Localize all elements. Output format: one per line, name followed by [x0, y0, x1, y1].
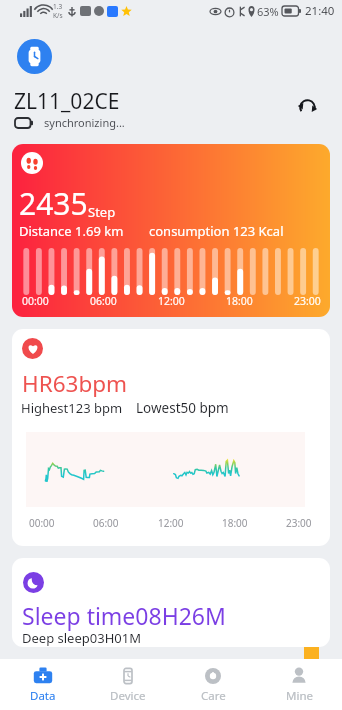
button[interactable]: Watch device — [17, 39, 52, 74]
button[interactable]: Care — [170, 659, 256, 710]
staticText: K/s — [53, 11, 63, 20]
staticText: Mine — [286, 688, 313, 704]
button[interactable]: Sleep time08H26M — [12, 558, 330, 647]
staticText: 21:40 — [305, 3, 335, 19]
staticText: 00:00 — [22, 294, 49, 308]
staticText: consumption 123 Kcal — [149, 222, 284, 240]
staticText: 18:00 — [222, 516, 248, 530]
button[interactable]: Refresh — [292, 92, 322, 122]
staticText: Deep sleep03H01M — [22, 629, 141, 647]
staticText: Step — [88, 203, 116, 221]
staticText: synchronizing... — [44, 115, 125, 130]
staticText: Care — [201, 688, 226, 704]
staticText: 12:00 — [158, 294, 185, 308]
staticText: 23:00 — [294, 294, 321, 308]
staticText: Sleep time08H26M — [22, 600, 226, 631]
staticText: Data — [30, 688, 56, 704]
button[interactable]: Device — [85, 659, 170, 710]
button[interactable]: Data — [0, 659, 85, 710]
staticText: Device — [110, 688, 146, 704]
staticText: 2435 — [19, 183, 88, 224]
staticText: 23:00 — [286, 516, 312, 530]
staticText: 06:00 — [93, 516, 119, 530]
button[interactable]: 2435 — [12, 144, 330, 317]
staticText: 18:00 — [226, 294, 253, 308]
staticText: 1.3 — [53, 2, 63, 11]
staticText: 06:00 — [90, 294, 117, 308]
button[interactable]: Mine — [256, 659, 342, 710]
staticText: Lowest50 bpm — [136, 399, 229, 417]
button[interactable]: HR63bpm — [12, 329, 330, 546]
staticText: 12:00 — [158, 516, 184, 530]
staticText: ZL11_02CE — [14, 87, 120, 116]
staticText: Distance 1.69 km — [19, 222, 124, 240]
staticText: HR63bpm — [22, 368, 128, 399]
staticText: Highest123 bpm — [21, 399, 123, 417]
staticText: 00:00 — [29, 516, 55, 530]
staticText: 63% — [257, 4, 279, 19]
